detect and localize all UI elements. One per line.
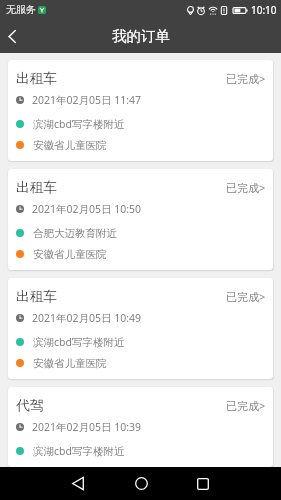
button[interactable]: Back	[0, 19, 24, 53]
staticText: 已完成>	[226, 398, 266, 413]
staticText: 无服务	[6, 3, 36, 16]
button[interactable]: 出租车	[8, 278, 273, 379]
staticText: 已完成>	[226, 180, 266, 195]
staticText: 安徽省儿童医院	[33, 357, 107, 370]
staticText: 滨湖cbd写字楼附近	[33, 117, 125, 131]
staticText: 滨湖cbd写字楼附近	[33, 335, 125, 349]
button[interactable]: 出租车	[8, 169, 273, 270]
staticText: 合肥大迈教育附近	[33, 227, 117, 240]
staticText: 代驾	[16, 397, 44, 414]
staticText: 滨湖cbd写字楼附近	[33, 444, 125, 458]
staticText: 已完成>	[226, 289, 266, 304]
staticText: 2021年02月05日 10:50	[32, 202, 142, 216]
staticText: 2021年02月05日 10:39	[32, 420, 142, 434]
staticText: 出租车	[16, 70, 58, 87]
staticText: 2021年02月05日 11:47	[32, 93, 142, 107]
staticText: 出租车	[16, 179, 58, 196]
staticText: 出租车	[16, 288, 58, 305]
staticText: 安徽省儿童医院	[33, 139, 107, 152]
staticText: 安徽省儿童医院	[33, 248, 107, 261]
button[interactable]: Home	[119, 467, 163, 500]
button[interactable]: Back	[56, 467, 100, 500]
button[interactable]: Recents	[181, 467, 225, 500]
staticText: 已完成>	[226, 71, 266, 86]
button[interactable]: 代驾	[8, 387, 273, 467]
button[interactable]: 出租车	[8, 60, 273, 161]
staticText: 2021年02月05日 10:49	[32, 311, 142, 325]
staticText: 我的订单	[112, 27, 170, 45]
staticText: 10:10	[251, 3, 277, 17]
